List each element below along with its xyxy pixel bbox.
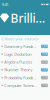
button[interactable]: Computer Science Basics	[0, 81, 50, 89]
staticText: JOIN	[41, 52, 47, 56]
button[interactable]: Logic Deduction	[0, 50, 50, 58]
staticText: DONE	[41, 84, 48, 87]
button[interactable]: Number Theory	[0, 66, 50, 74]
button[interactable]: Geometry Fundamentals	[0, 42, 50, 50]
staticText: Logic Deduction	[4, 51, 31, 57]
button[interactable]: Probability Fundamentals	[0, 74, 50, 81]
staticText: Number Theory	[4, 67, 32, 72]
staticText: Computer Science Basics	[4, 83, 38, 88]
staticText: JOIN	[41, 68, 47, 71]
staticText: Algebra Puzzles	[4, 59, 32, 65]
staticText: DONE	[41, 60, 48, 64]
staticText: Choose your courses	[1, 36, 38, 41]
staticText: Brilliant	[10, 10, 50, 26]
button[interactable]: Algebra Puzzles	[0, 58, 50, 66]
staticText: JOIN	[41, 45, 47, 48]
staticText: Probability Fundamentals	[4, 75, 38, 80]
staticText: Geometry Fundamentals	[4, 44, 38, 49]
staticText: 9:41	[1, 2, 8, 7]
staticText: DONE	[41, 76, 48, 79]
